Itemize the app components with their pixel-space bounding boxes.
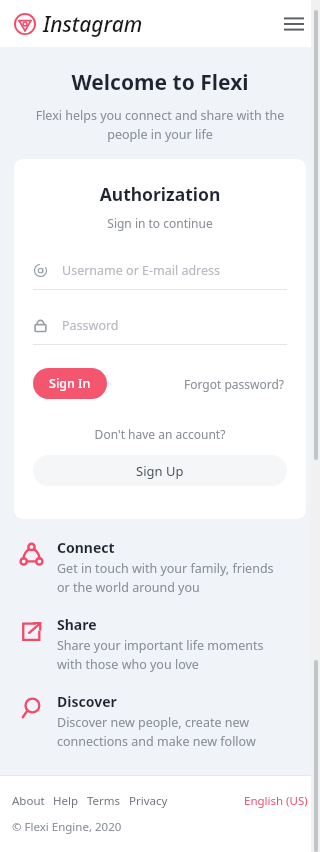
staticText: Sign Up — [136, 462, 184, 480]
staticText: Get in touch with your family, friends o… — [57, 560, 274, 596]
button[interactable]: Forgot password? — [182, 371, 287, 397]
staticText: Terms — [87, 793, 121, 809]
button[interactable]: Sign Up — [33, 455, 287, 486]
staticText: Connect — [57, 538, 115, 557]
button[interactable]: Username or E-mail adress — [33, 257, 287, 283]
staticText: Don't have an account? — [33, 426, 287, 442]
staticText: English (US) — [244, 793, 308, 809]
staticText: Password — [62, 317, 119, 334]
button[interactable]: About — [12, 793, 45, 809]
staticText: Forgot password? — [184, 376, 285, 392]
staticText: Privacy — [129, 793, 168, 809]
button[interactable]: English (US) — [244, 793, 308, 809]
staticText: Username or E-mail adress — [62, 262, 221, 279]
button[interactable]: Connect — [0, 538, 320, 596]
staticText: © Flexi Engine, 2020 — [12, 819, 122, 835]
button[interactable]: Password — [33, 312, 287, 338]
staticText: Flexi helps you connect and share with t… — [18, 107, 302, 143]
button[interactable]: Discover — [0, 692, 320, 750]
staticText: Authorization — [33, 182, 287, 206]
staticText: About — [12, 793, 45, 809]
staticText: Discover — [57, 692, 117, 711]
button[interactable]: Open menu — [278, 8, 310, 40]
staticText: Sign In — [49, 375, 91, 392]
staticText: Welcome to Flexi — [0, 68, 320, 97]
button[interactable]: Privacy — [129, 793, 168, 809]
button[interactable]: Share — [0, 615, 320, 673]
button[interactable]: Sign In — [33, 368, 107, 399]
staticText: Sign in to continue — [33, 215, 287, 231]
staticText: Share your important life moments with t… — [57, 637, 264, 673]
staticText: Help — [53, 793, 79, 809]
button[interactable]: Help — [53, 793, 79, 809]
staticText: Discover new people, create new connecti… — [57, 714, 256, 750]
staticText: Instagram — [43, 10, 143, 39]
staticText: Share — [57, 615, 97, 634]
button[interactable]: Terms — [87, 793, 121, 809]
